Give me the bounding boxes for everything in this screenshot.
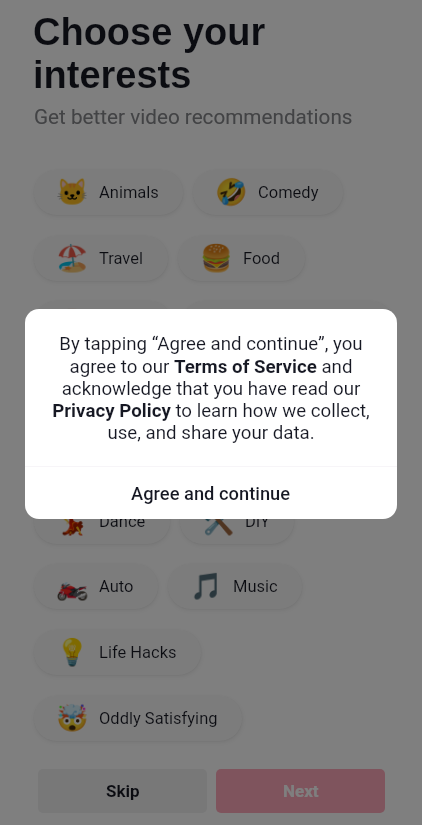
button[interactable]: 🎨 bbox=[34, 433, 146, 478]
staticText: By tapping “Agree and continue”, you agr… bbox=[49, 333, 373, 443]
staticText: Choose your interests bbox=[33, 11, 266, 96]
staticText: Music bbox=[233, 577, 278, 596]
button[interactable]: Skip bbox=[38, 769, 207, 813]
button[interactable]: 💃 bbox=[34, 499, 170, 544]
staticText: DIY bbox=[245, 512, 270, 531]
staticText: 🏍 bbox=[56, 571, 89, 602]
button[interactable]: 🌿 bbox=[156, 433, 314, 478]
staticText: Get better video recommendations bbox=[34, 105, 353, 129]
button[interactable]: 🍔 bbox=[178, 236, 305, 281]
staticText: 💃 bbox=[56, 506, 89, 537]
staticText: Auto bbox=[99, 577, 134, 596]
staticText: 🤯 bbox=[56, 703, 89, 734]
button[interactable]: 💄 bbox=[191, 367, 385, 412]
staticText: Travel bbox=[99, 249, 144, 268]
button[interactable]: 🤣 bbox=[193, 170, 343, 215]
staticText: 🛠 bbox=[202, 506, 235, 537]
staticText: 🤣 bbox=[215, 177, 248, 208]
button[interactable]: 🏀 bbox=[34, 301, 172, 346]
staticText: 💄 bbox=[213, 374, 246, 405]
button[interactable]: 🐱 bbox=[34, 170, 183, 215]
button[interactable]: 🏖 bbox=[34, 236, 168, 281]
staticText: 💡 bbox=[56, 637, 89, 668]
staticText: Beauty & Style bbox=[256, 380, 361, 399]
button[interactable]: 🛠 bbox=[180, 499, 294, 544]
staticText: Skip bbox=[106, 781, 140, 801]
button[interactable]: 💪 bbox=[182, 301, 393, 346]
staticText: Life Hacks bbox=[99, 643, 177, 662]
button[interactable]: 🏍 bbox=[34, 564, 158, 609]
staticText: Agree and continue bbox=[131, 483, 291, 504]
staticText: 🏀 bbox=[56, 308, 89, 339]
staticText: Dance bbox=[99, 512, 146, 531]
staticText: 🎮 bbox=[56, 374, 89, 405]
staticText: Next bbox=[283, 781, 319, 801]
staticText: 🐱 bbox=[56, 177, 89, 208]
staticText: 🍔 bbox=[200, 243, 233, 274]
button[interactable]: Agree and continue bbox=[25, 467, 397, 519]
staticText: Gaming bbox=[99, 380, 157, 399]
staticText: Food bbox=[243, 249, 281, 268]
button[interactable]: Next bbox=[216, 769, 385, 813]
staticText: Oddly Satisfying bbox=[99, 709, 218, 728]
button[interactable]: 💡 bbox=[34, 630, 201, 675]
staticText: 🎵 bbox=[190, 571, 223, 602]
button[interactable]: 🎮 bbox=[34, 367, 181, 412]
staticText: Animals bbox=[99, 183, 159, 202]
staticText: 🏖 bbox=[56, 243, 89, 274]
staticText: Comedy bbox=[258, 183, 319, 202]
button[interactable]: 🤯 bbox=[34, 696, 242, 741]
button[interactable]: 🎵 bbox=[168, 564, 302, 609]
staticText: 💪 bbox=[204, 308, 237, 339]
